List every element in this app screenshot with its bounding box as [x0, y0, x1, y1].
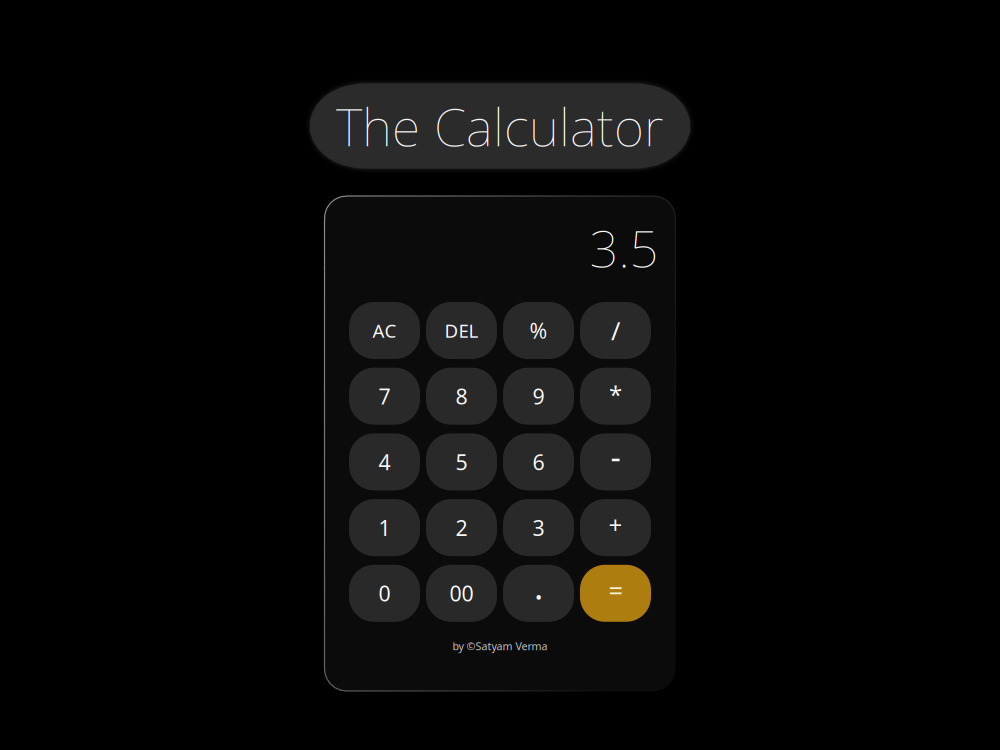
button[interactable]: . [503, 565, 574, 622]
button[interactable]: / [580, 302, 651, 359]
button[interactable]: 7 [349, 368, 420, 425]
button[interactable]: 6 [503, 433, 574, 490]
button[interactable]: DEL [426, 302, 497, 359]
staticText: The Calculator [336, 91, 664, 161]
button[interactable]: + [580, 499, 651, 556]
staticText: = [608, 573, 622, 607]
staticText: 5 [455, 448, 467, 476]
staticText: * [609, 378, 622, 410]
staticText: 3 [532, 513, 544, 542]
staticText: / [611, 314, 620, 347]
staticText: 4 [378, 448, 390, 476]
button[interactable]: % [503, 302, 574, 359]
button[interactable]: 2 [426, 499, 497, 556]
button[interactable]: * [580, 368, 651, 425]
button[interactable]: 9 [503, 368, 574, 425]
staticText: - [610, 436, 620, 478]
staticText: 00 [449, 579, 473, 607]
staticText: DEL [444, 318, 478, 343]
staticText: 9 [532, 382, 544, 410]
button[interactable]: 0 [349, 565, 420, 622]
button[interactable]: 1 [349, 499, 420, 556]
staticText: . [534, 563, 543, 609]
staticText: 0 [378, 579, 390, 607]
button[interactable]: 4 [349, 433, 420, 490]
staticText: 8 [455, 382, 467, 410]
staticText: 1 [378, 513, 390, 542]
staticText: 2 [455, 513, 467, 542]
button[interactable]: = [580, 565, 651, 622]
button[interactable]: - [580, 433, 651, 490]
staticText: + [608, 509, 622, 541]
staticText: % [529, 316, 547, 345]
staticText: 7 [378, 382, 390, 410]
staticText: by ©Satyam Verma [452, 639, 547, 653]
staticText: 6 [532, 448, 544, 476]
staticText: AC [372, 318, 396, 343]
button[interactable]: 00 [426, 565, 497, 622]
button[interactable]: 5 [426, 433, 497, 490]
button[interactable]: AC [349, 302, 420, 359]
staticText: 3.5 [589, 214, 658, 281]
button[interactable]: 3 [503, 499, 574, 556]
button[interactable]: 8 [426, 368, 497, 425]
